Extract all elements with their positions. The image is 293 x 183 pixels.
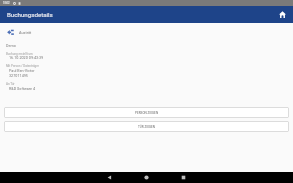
button[interactable]: Home [276,8,289,21]
button[interactable]: Austritt [0,27,293,37]
staticText: Buchung erstellt um [6,52,33,56]
staticText: PERSON ZEIGEN [135,111,159,115]
staticText: Buchungsdetails [7,11,53,18]
staticText: Mit Person / Datenträger [6,64,39,68]
staticText: 327011495 [9,74,28,78]
staticText: TÜR ZEIGEN [138,125,156,129]
staticText: Paul Ben-Victor [9,69,35,73]
button[interactable]: Back [104,172,115,183]
staticText: 16.10.2020 09:43:39 [9,56,44,60]
button[interactable]: PERSON ZEIGEN [4,107,289,118]
button[interactable]: TÜR ZEIGEN [4,121,289,132]
button[interactable]: Recent apps [178,172,189,183]
button[interactable]: Home [141,172,152,183]
staticText: 18:02 [3,2,10,5]
staticText: R&D Software 4 [9,87,36,91]
staticText: Austritt [19,31,32,35]
staticText: An Tür [6,82,15,86]
staticText: Demo [6,44,16,48]
